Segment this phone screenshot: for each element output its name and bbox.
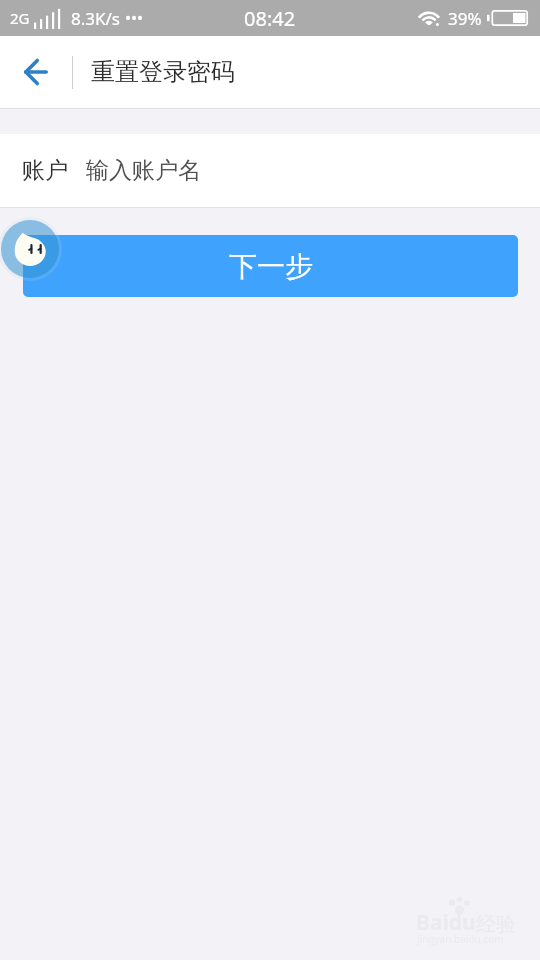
staticText: 8.3K/s xyxy=(71,7,120,30)
staticText: 39% xyxy=(448,7,482,30)
staticText: 2G xyxy=(10,8,30,28)
button[interactable]: Back xyxy=(0,36,72,108)
staticText: 经验 xyxy=(476,912,516,937)
staticText: 下一步 xyxy=(229,249,313,284)
staticText: jingyan.baidu.com xyxy=(417,932,504,946)
staticText: 账户 xyxy=(22,156,68,185)
staticText: ••• xyxy=(125,7,144,29)
button[interactable]: Assistant xyxy=(0,215,64,283)
button[interactable]: 下一步 xyxy=(23,235,518,297)
staticText: 输入账户名 xyxy=(86,156,201,185)
staticText: 重置登录密码 xyxy=(91,57,235,87)
staticText: 08:42 xyxy=(244,5,296,32)
staticText: Baidu xyxy=(416,908,476,937)
button[interactable]: 账户 xyxy=(0,134,540,207)
